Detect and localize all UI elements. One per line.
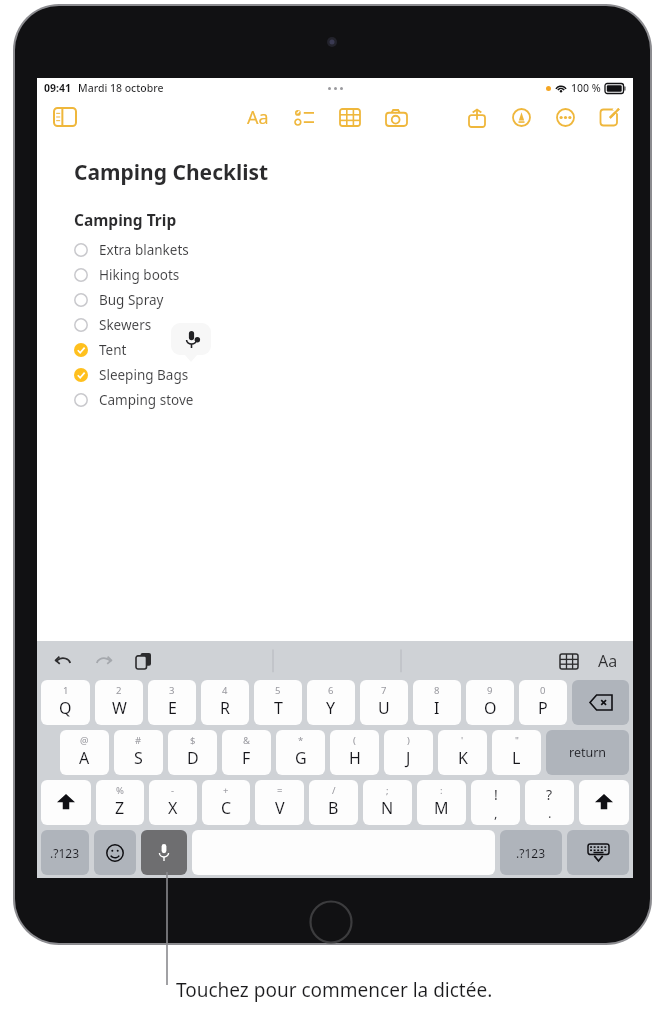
staticText: * [298,734,304,747]
button[interactable]: Sleeping Bags [74,362,633,387]
button[interactable]: Return [546,730,629,775]
button[interactable]: $ [168,730,217,775]
staticText: Z [115,797,125,819]
staticText: 5 [275,684,281,697]
button[interactable]: Show sidebar [50,102,80,132]
button[interactable]: Table [336,102,364,132]
button[interactable]: 7 [360,680,408,725]
staticText: K [458,747,468,769]
staticText: & [243,734,250,747]
staticText: 2 [116,684,122,697]
button[interactable]: Shift [579,780,629,825]
button[interactable]: Format [596,648,620,674]
staticText: ? [546,785,553,804]
staticText: .?123 [516,845,546,861]
staticText: 100 % [571,81,601,95]
button[interactable]: 3 [148,680,196,725]
button[interactable]: - [149,780,197,825]
staticText: N [381,797,394,819]
button[interactable]: 9 [466,680,514,725]
button[interactable]: Skewers [74,312,633,337]
button[interactable]: / [309,780,358,825]
staticText: 8 [434,684,440,697]
staticText: : [440,784,443,797]
staticText: L [512,747,521,769]
button[interactable]: 8 [413,680,461,725]
button[interactable]: Delete [572,680,629,725]
staticText: 7 [381,684,387,697]
button[interactable]: Numbers [500,830,562,875]
staticText: % [116,784,124,797]
button[interactable]: @ [60,730,109,775]
staticText: 6 [328,684,334,697]
staticText: X [168,797,178,819]
button[interactable]: ( [330,730,379,775]
button[interactable]: Paste [131,648,155,674]
button[interactable]: ; [363,780,412,825]
button[interactable]: Checklist [290,102,318,132]
button[interactable]: % [96,780,144,825]
button[interactable]: " [492,730,541,775]
staticText: 3 [169,684,175,697]
staticText: D [187,747,199,769]
button[interactable]: Share [463,102,491,132]
staticText: , [494,804,498,820]
staticText: E [168,697,177,719]
button[interactable]: 1 [41,680,90,725]
button[interactable]: New note [595,102,623,132]
button[interactable]: = [255,780,304,825]
staticText: Bug Spray [99,291,164,309]
button[interactable]: 2 [95,680,143,725]
button[interactable]: ) [384,730,433,775]
button[interactable]: Tent [74,337,633,362]
button[interactable]: Text format [244,102,272,132]
button[interactable]: Emoji [94,830,136,875]
button[interactable]: Dictation [141,830,187,875]
button[interactable]: Camera [382,102,410,132]
staticText: R [220,697,230,719]
button[interactable]: # [114,730,163,775]
staticText: Mardi 18 octobre [78,81,164,95]
button[interactable]: & [222,730,271,775]
button[interactable]: ! [471,780,520,825]
staticText: ! [494,785,498,804]
button[interactable]: Numbers [41,830,89,875]
button[interactable]: Hide keyboard [567,830,629,875]
button[interactable]: Redo [91,648,115,674]
button[interactable]: Insert table [557,648,581,674]
button[interactable]: Start dictation [171,323,211,355]
staticText: A [79,747,90,769]
button[interactable]: Extra blankets [74,237,633,262]
staticText: 09:41 [44,81,71,95]
staticText: ; [386,784,389,797]
button[interactable]: Camping stove [74,387,633,412]
button[interactable]: * [276,730,325,775]
button[interactable]: 0 [519,680,567,725]
button[interactable]: More [551,102,579,132]
button[interactable]: 4 [201,680,249,725]
button[interactable]: Bug Spray [74,287,633,312]
button[interactable]: 5 [254,680,302,725]
button[interactable]: : [417,780,466,825]
button[interactable]: 6 [307,680,355,725]
staticText: ' [461,734,464,747]
button[interactable]: + [202,780,250,825]
button[interactable]: Hiking boots [74,262,633,287]
staticText: Camping Trip [74,209,177,230]
button[interactable]: Markup [507,102,535,132]
button[interactable]: Undo [51,648,75,674]
button[interactable]: Shift [41,780,91,825]
staticText: Skewers [99,316,152,334]
staticText: F [242,747,251,769]
staticText: Y [326,697,336,719]
button[interactable]: ' [438,730,487,775]
staticText: S [134,747,143,769]
staticText: . [548,804,552,820]
staticText: U [378,697,390,719]
staticText: G [295,747,307,769]
button[interactable]: ? [525,780,574,825]
staticText: B [328,797,339,819]
staticText: # [135,734,142,747]
staticText: ) [407,734,410,747]
